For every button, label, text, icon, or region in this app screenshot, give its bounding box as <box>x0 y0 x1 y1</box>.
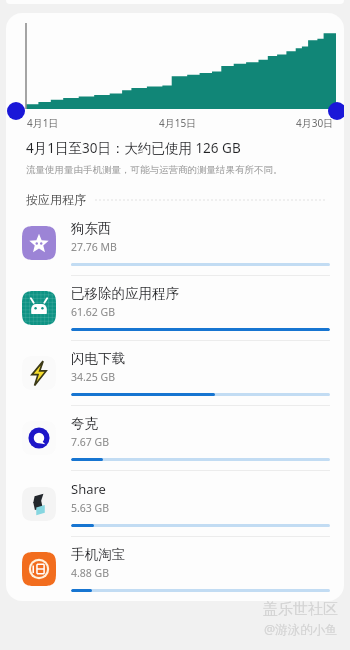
staticText: 4月15日 <box>159 116 197 130</box>
staticText: 4月1日 <box>27 116 59 130</box>
button[interactable]: 夸克 app icon <box>6 406 344 470</box>
other: Share app icon <box>22 487 56 521</box>
button[interactable]: 闪电下载 app icon <box>6 341 344 405</box>
staticText: 4月30日 <box>296 116 334 130</box>
staticText: 盖乐世社区 <box>263 600 338 619</box>
staticText: 已移除的应用程序 <box>71 285 179 302</box>
staticText: Share <box>71 480 106 498</box>
staticText: 61.62 GB <box>71 305 116 319</box>
button[interactable]: Removed apps icon <box>6 276 344 340</box>
staticText: 按应用程序 <box>26 192 86 207</box>
staticText: 闪电下载 <box>71 350 125 367</box>
staticText: 5.63 GB <box>71 501 110 515</box>
staticText: 流量使用量由手机测量，可能与运营商的测量结果有所不同。 <box>26 164 283 176</box>
staticText: 4月1日至30日：大约已使用 126 GB <box>26 139 241 157</box>
other: 手机淘宝 app icon <box>22 552 56 586</box>
button[interactable]: 狗东西 app icon <box>6 211 344 275</box>
staticText: 7.67 GB <box>71 435 110 449</box>
other: 夸克 app icon <box>22 421 56 455</box>
other: Removed apps icon <box>22 291 56 325</box>
staticText: 27.76 MB <box>71 240 117 254</box>
staticText: 34.25 GB <box>71 370 116 384</box>
staticText: @游泳的小鱼 <box>264 621 338 638</box>
other: 闪电下载 app icon <box>22 356 56 390</box>
staticText: 狗东西 <box>71 220 112 237</box>
staticText: 夸克 <box>71 415 98 432</box>
other: 狗东西 app icon <box>22 226 56 260</box>
button[interactable]: 手机淘宝 app icon <box>6 537 344 601</box>
staticText: 4.88 GB <box>71 566 110 580</box>
staticText: 手机淘宝 <box>71 546 125 563</box>
button[interactable]: Share app icon <box>6 471 344 536</box>
